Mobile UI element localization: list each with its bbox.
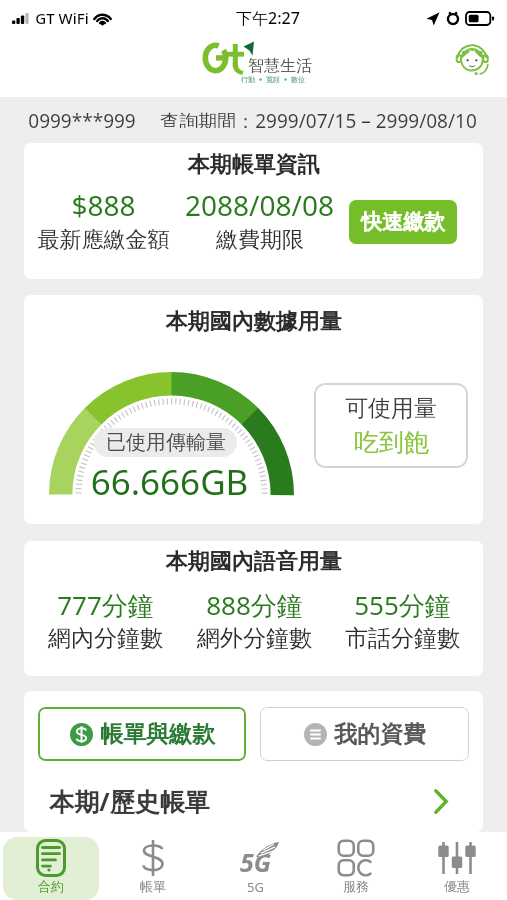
- staticText: 已使用傳輸量: [106, 430, 226, 455]
- staticText: 最新應繳金額: [33, 226, 174, 254]
- staticText: 本期國內語音用量: [24, 548, 483, 576]
- staticText: 網外分鐘數: [197, 624, 312, 653]
- staticText: 吃到飽: [354, 427, 429, 458]
- staticText: 帳單: [140, 878, 166, 894]
- staticText: 5G: [240, 845, 272, 879]
- staticText: 5G: [247, 878, 264, 896]
- button[interactable]: 帳單與繳款: [38, 707, 246, 761]
- staticText: 777分鐘: [57, 587, 154, 623]
- staticText: 0999***999: [28, 108, 136, 128]
- button[interactable]: Customer service: [452, 39, 492, 79]
- staticText: 66.666GB: [47, 458, 292, 506]
- staticText: 帳單與繳款: [100, 720, 215, 749]
- button[interactable]: 合約: [3, 837, 99, 900]
- staticText: 市話分鐘數: [345, 624, 460, 653]
- staticText: 數位: [291, 75, 305, 84]
- staticText: 我的資費: [334, 720, 426, 749]
- staticText: 繳費期限: [216, 226, 304, 254]
- staticText: 555分鐘: [354, 587, 451, 623]
- staticText: 下午2:27: [236, 7, 300, 29]
- button[interactable]: 5G: [207, 837, 302, 900]
- button[interactable]: 帳單: [105, 837, 201, 900]
- staticText: 888分鐘: [206, 587, 303, 623]
- button[interactable]: 快速繳款: [349, 200, 457, 244]
- button[interactable]: 我的資費: [260, 707, 469, 761]
- staticText: 網內分鐘數: [48, 624, 163, 653]
- staticText: 優惠: [444, 878, 470, 894]
- staticText: GT WiFi: [35, 8, 89, 28]
- staticText: 智慧生活: [248, 56, 312, 76]
- staticText: 本期國內數據用量: [24, 308, 483, 336]
- staticText: $888: [71, 186, 136, 224]
- button[interactable]: 優惠: [409, 837, 504, 900]
- staticText: 行動: [241, 75, 255, 84]
- staticText: 快速繳款: [361, 209, 445, 235]
- staticText: 寬頻: [266, 75, 280, 84]
- staticText: 查詢期間：2999/07/15 – 2999/08/10: [160, 108, 477, 128]
- staticText: 本期帳單資訊: [24, 151, 483, 179]
- button[interactable]: 服務: [308, 837, 403, 900]
- staticText: 合約: [38, 878, 64, 894]
- staticText: 服務: [343, 878, 369, 894]
- staticText: 2088/08/08: [185, 186, 334, 224]
- staticText: 可使用量: [345, 394, 437, 423]
- staticText: 本期/歷史帳單: [49, 784, 210, 818]
- button[interactable]: 本期/歷史帳單: [24, 770, 483, 832]
